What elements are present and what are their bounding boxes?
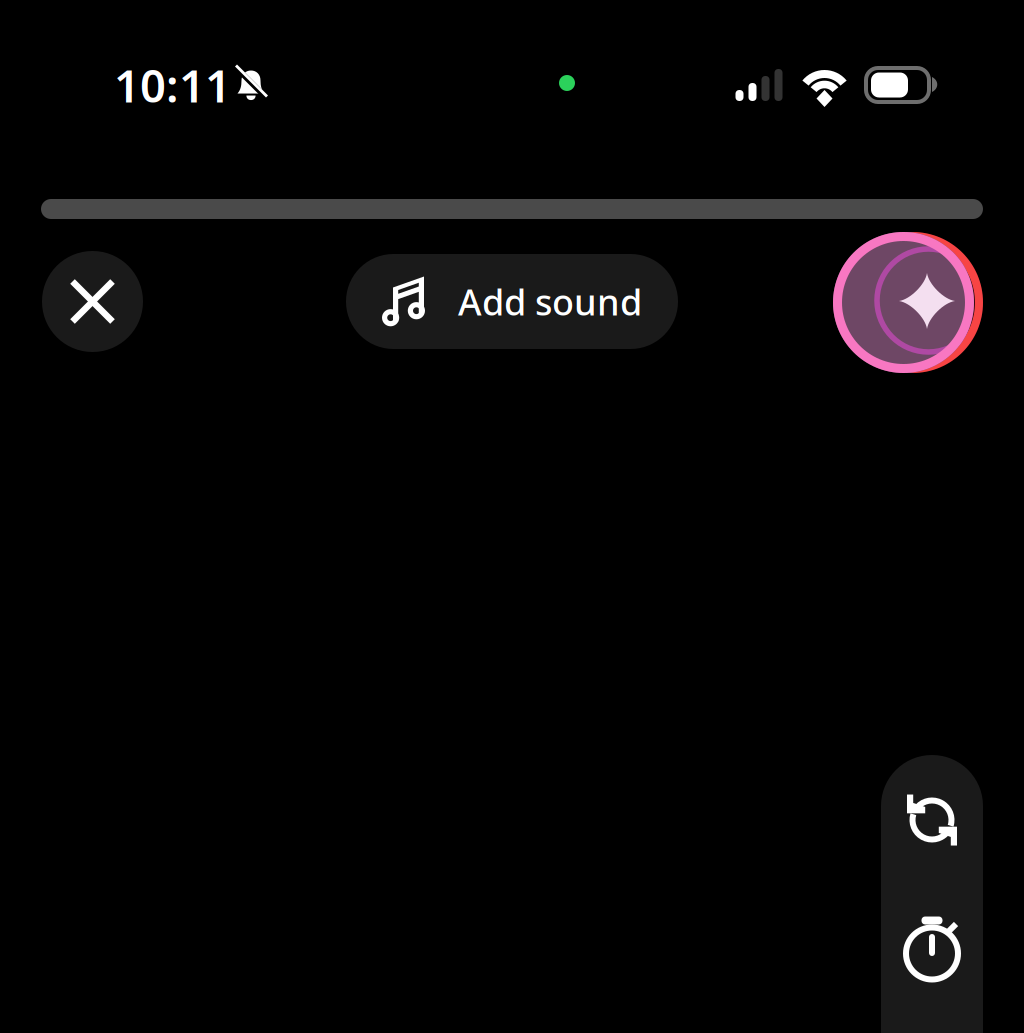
staticText: Add sound	[458, 278, 642, 325]
button[interactable]: AI effects	[827, 230, 981, 375]
button[interactable]: Flip camera	[881, 755, 983, 885]
staticText: 10:11	[114, 55, 231, 115]
button[interactable]: Close	[42, 251, 143, 352]
button[interactable]: Timer	[881, 885, 983, 1015]
button[interactable]: Add sound	[346, 254, 678, 349]
